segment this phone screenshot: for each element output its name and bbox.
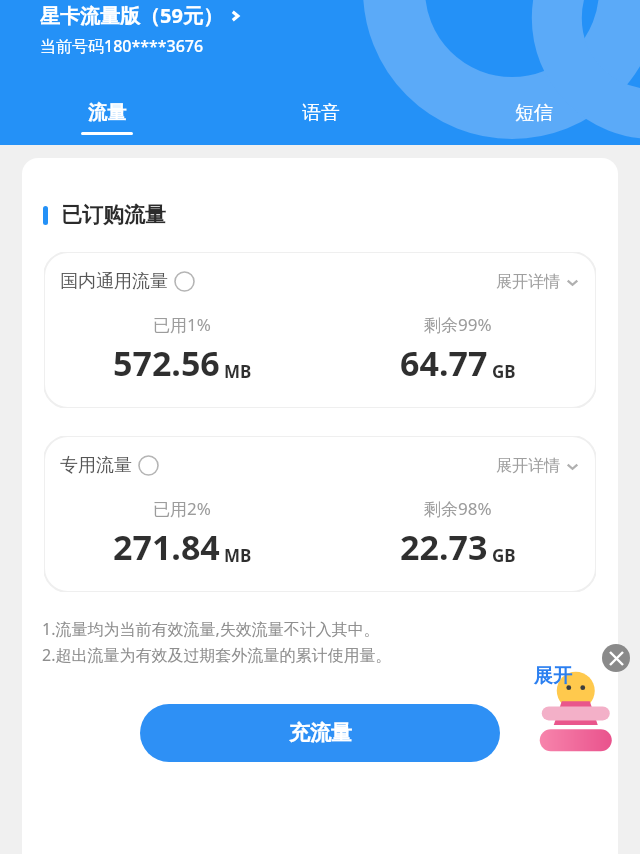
button[interactable]: 展开详情 xyxy=(496,272,580,292)
staticText: 剩余99% xyxy=(424,313,492,336)
staticText: 展开 xyxy=(534,664,572,688)
staticText: GB xyxy=(492,360,516,383)
staticText: 2.超出流量为有效及过期套外流量的累计使用量。 xyxy=(42,644,392,666)
button[interactable]: 展开详情 xyxy=(496,456,580,476)
button[interactable]: 充流量 xyxy=(140,704,500,762)
button[interactable]: 专用流量 xyxy=(44,436,596,592)
staticText: MB xyxy=(224,360,252,383)
staticText: 充流量 xyxy=(289,720,352,746)
staticText: 271.84 xyxy=(113,524,220,570)
staticText: 流量 xyxy=(88,101,126,125)
staticText: 星卡流量版（59元） xyxy=(40,2,223,29)
staticText: 剩余98% xyxy=(424,497,492,520)
button[interactable]: 帮助 xyxy=(174,271,195,292)
button[interactable]: 语音 xyxy=(214,97,427,139)
staticText: 已用1% xyxy=(153,313,211,336)
staticText: 已订购流量 xyxy=(61,202,166,228)
staticText: 当前号码180****3676 xyxy=(40,35,204,57)
staticText: 64.77 xyxy=(400,340,488,386)
button[interactable]: 新人礼包广告 xyxy=(530,644,618,748)
staticText: 专用流量 xyxy=(60,454,132,477)
button[interactable]: 帮助 xyxy=(138,455,159,476)
staticText: 国内通用流量 xyxy=(60,270,168,293)
button[interactable]: 关闭广告 xyxy=(602,644,630,672)
staticText: 展开详情 xyxy=(496,456,560,476)
button[interactable]: 流量 xyxy=(0,97,214,139)
staticText: GB xyxy=(492,544,516,567)
staticText: 语音 xyxy=(302,101,340,125)
staticText: MB xyxy=(224,544,252,567)
staticText: 572.56 xyxy=(113,340,220,386)
button[interactable]: 短信 xyxy=(427,97,640,139)
staticText: 1.流量均为当前有效流量,失效流量不计入其中。 xyxy=(42,618,380,640)
staticText: 短信 xyxy=(515,101,553,125)
staticText: 展开详情 xyxy=(496,272,560,292)
staticText: 已用2% xyxy=(153,497,211,520)
button[interactable]: 星卡流量版（59元） xyxy=(40,2,243,29)
button[interactable]: 国内通用流量 xyxy=(44,252,596,408)
staticText: 22.73 xyxy=(400,524,488,570)
